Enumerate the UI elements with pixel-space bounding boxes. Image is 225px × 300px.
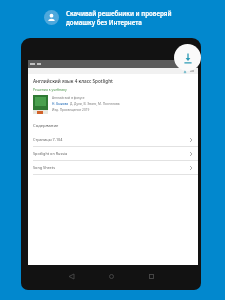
button[interactable]: Английский язык 4 класс Spotlight xyxy=(33,78,193,118)
staticText: Решения к учебнику xyxy=(33,87,67,92)
button[interactable]: Spotlight on Russia xyxy=(28,147,198,160)
button[interactable]: Download xyxy=(174,44,201,71)
button[interactable]: Song Sheets xyxy=(28,161,198,174)
button[interactable]: Recent apps xyxy=(131,269,171,283)
staticText: Н. Быкова xyxy=(52,102,69,106)
staticText: Английский в фокусе xyxy=(52,96,85,100)
staticText: Song Sheets xyxy=(33,165,55,170)
staticText: Страницы 7-104 xyxy=(33,137,63,142)
staticText: Д. Дули, В. Эванс, М. Поспелова xyxy=(70,102,120,106)
staticText: Изд. Просвещение 2019 xyxy=(52,108,90,112)
staticText: Содержание xyxy=(33,123,59,129)
staticText: Spotlight on Russia xyxy=(33,151,68,156)
button[interactable]: Home xyxy=(91,269,131,283)
button[interactable]: Страницы 7-104 xyxy=(28,133,198,146)
button[interactable]: Back xyxy=(51,269,91,283)
staticText: домашку без Интернета xyxy=(66,18,142,26)
staticText: Английский язык 4 класс Spotlight xyxy=(33,78,113,84)
staticText: Скачивай решебники и проверяй xyxy=(66,9,172,17)
